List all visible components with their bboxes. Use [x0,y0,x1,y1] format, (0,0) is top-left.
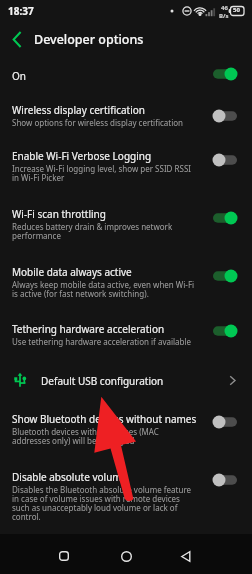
button[interactable]: Home [110,540,142,572]
staticText: B/s [219,12,229,20]
staticText: Show options for wireless display certif… [12,117,184,128]
staticText: Always keep mobile data active, even whe… [12,279,198,300]
staticText: Disables the Bluetooth absolute volume f… [12,484,198,523]
button[interactable]: Enable Wi-Fi Verbose Logging [0,149,252,189]
staticText: Enable Wi-Fi Verbose Logging [12,149,152,163]
staticText: Bluetooth devices without names (MAC add… [12,426,198,447]
button[interactable]: Switch off [209,108,241,124]
button[interactable]: Switch off [209,152,241,168]
button[interactable]: Switch on [209,210,241,226]
button[interactable]: Wi-Fi scan throttling [0,207,252,247]
button[interactable]: Navigate up [3,25,31,53]
button[interactable]: Switch on [209,66,241,82]
staticText: 18:37 [8,4,34,18]
button[interactable]: Wireless display certification [0,103,252,143]
staticText: Reduces battery drain & improves network… [12,221,198,242]
staticText: Use tethering hardware acceleration if a… [12,336,192,347]
button[interactable]: Default USB configuration [0,366,252,396]
button[interactable]: Switch off [209,472,241,488]
staticText: Wireless display certification [12,103,146,117]
button[interactable]: Recent apps [48,540,80,572]
button[interactable]: Switch on [209,268,241,284]
staticText: Increase Wi-Fi logging level, show per S… [12,163,198,184]
staticText: Wi-Fi scan throttling [12,207,106,221]
button[interactable]: Switch on [209,323,241,339]
button[interactable]: Switch off [209,414,241,430]
staticText: Default USB configuration [41,374,164,388]
staticText: Tethering hardware acceleration [12,322,165,336]
button[interactable]: Mobile data always active [0,265,252,305]
button[interactable]: Back [170,540,202,572]
staticText: Mobile data always active [12,265,132,279]
staticText: Disable absolute volume [12,470,128,484]
staticText: On [12,69,26,83]
button[interactable]: Disable absolute volume [0,470,252,526]
staticText: Show Bluetooth devices without names [12,412,197,426]
staticText: 46 [221,4,228,12]
staticText: 50 [233,6,240,14]
button[interactable]: Tethering hardware acceleration [0,322,252,362]
staticText: Developer options [34,31,144,48]
button[interactable]: Show Bluetooth devices without names [0,412,252,452]
button[interactable]: On [0,69,252,85]
